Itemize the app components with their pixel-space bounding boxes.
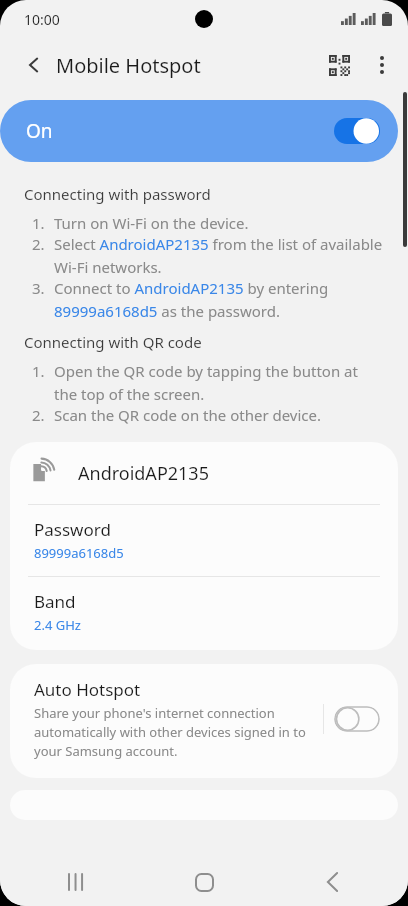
button[interactable]: Password xyxy=(10,505,398,576)
staticText: 89999a6168d5 xyxy=(34,544,124,562)
button[interactable]: More options xyxy=(362,42,402,88)
staticText: 2. xyxy=(32,234,54,254)
staticText: Share your phone's internet connection a… xyxy=(34,704,317,760)
staticText: Select AndroidAP2135 from the list of av… xyxy=(54,234,384,277)
button[interactable]: AndroidAP2135 xyxy=(10,442,398,504)
button[interactable]: Auto Hotspot toggle xyxy=(334,706,380,732)
staticText: 1. xyxy=(32,213,54,233)
button[interactable]: Auto Hotspot xyxy=(10,664,398,778)
staticText: Turn on Wi-Fi on the device. xyxy=(54,213,249,233)
button[interactable]: Back xyxy=(308,858,356,906)
staticText: 1. xyxy=(32,361,54,381)
staticText: AndroidAP2135 xyxy=(78,461,209,486)
button[interactable]: Show QR code xyxy=(316,42,362,88)
staticText: Connect to AndroidAP2135 by entering 899… xyxy=(54,278,384,321)
staticText: Auto Hotspot xyxy=(34,678,141,701)
staticText: Connecting with QR code xyxy=(24,332,202,352)
staticText: On xyxy=(26,118,53,144)
staticText: Open the QR code by tapping the button a… xyxy=(54,361,384,404)
staticText: Password xyxy=(34,518,111,541)
staticText: 3. xyxy=(32,278,54,298)
button[interactable]: On xyxy=(0,100,398,162)
button[interactable]: Home xyxy=(180,858,228,906)
staticText: Mobile Hotspot xyxy=(56,52,201,79)
staticText: 2.4 GHz xyxy=(34,616,81,634)
button[interactable]: Back xyxy=(14,45,54,85)
staticText: Band xyxy=(34,590,76,613)
staticText: Connecting with password xyxy=(24,184,211,204)
staticText: 2. xyxy=(32,405,54,425)
staticText: 10:00 xyxy=(24,10,60,29)
button[interactable]: Recent apps xyxy=(52,858,100,906)
button[interactable]: Band xyxy=(10,577,398,650)
staticText: Scan the QR code on the other device. xyxy=(54,405,322,425)
